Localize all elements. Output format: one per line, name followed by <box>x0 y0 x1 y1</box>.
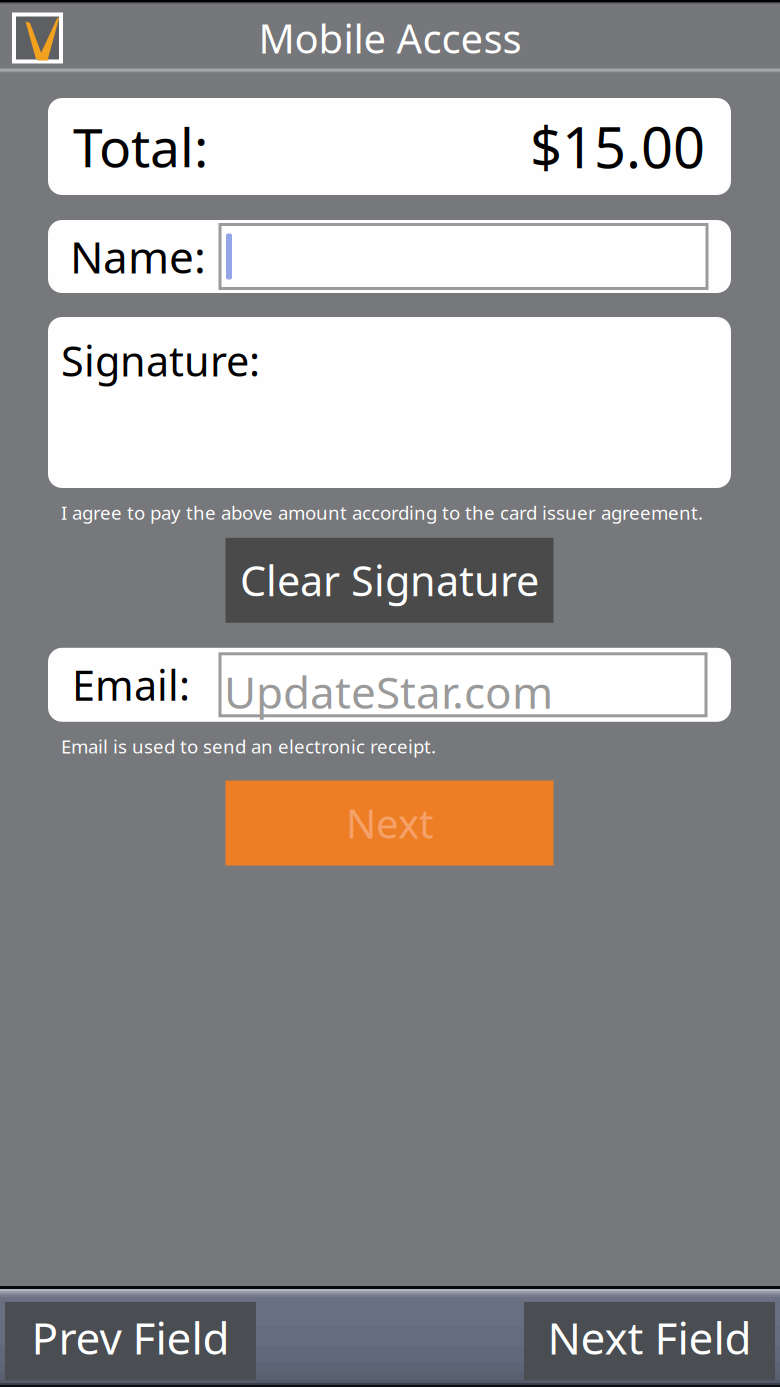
staticText: Mobile Access <box>258 11 521 64</box>
staticText: Total: <box>73 111 208 182</box>
button[interactable]: Prev Field <box>5 1302 256 1380</box>
button[interactable]: Clear Signature <box>225 538 553 623</box>
staticText: Signature: <box>61 333 260 388</box>
button[interactable]: Next Field <box>524 1302 775 1380</box>
staticText: Email: <box>72 657 190 712</box>
staticText: Clear Signature <box>240 553 539 608</box>
staticText: Next <box>346 796 433 850</box>
button[interactable]: Company logo <box>12 12 63 63</box>
staticText: Next Field <box>547 1308 751 1367</box>
staticText: $15.00 <box>530 109 705 184</box>
staticText: I agree to pay the above amount accordin… <box>61 500 703 525</box>
button[interactable]: Next <box>225 781 553 866</box>
staticText: Email is used to send an electronic rece… <box>61 734 436 759</box>
staticText: Name: <box>70 227 206 286</box>
staticText: UpdateStar.com <box>224 663 553 721</box>
staticText: Prev Field <box>31 1308 229 1367</box>
